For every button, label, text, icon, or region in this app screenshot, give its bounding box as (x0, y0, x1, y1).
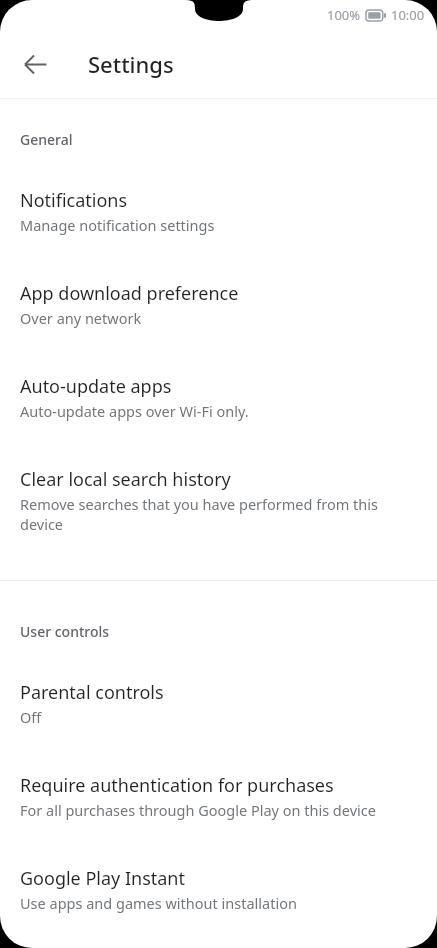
button[interactable]: Auto-update apps (0, 328, 437, 421)
staticText: Off (20, 707, 42, 727)
staticText: Manage notification settings (20, 215, 215, 235)
staticText: User controls (20, 622, 110, 641)
button[interactable]: Google Play Instant (0, 820, 437, 913)
staticText: Use apps and games without installation (20, 893, 297, 913)
button[interactable]: Clear local search history (0, 421, 437, 535)
staticText: Over any network (20, 308, 142, 328)
staticText: Google Play Instant (20, 866, 185, 891)
button[interactable]: Protect my updates (0, 913, 437, 948)
staticText: For all purchases through Google Play on… (20, 800, 376, 820)
staticText: Settings (88, 49, 174, 79)
staticText: Parental controls (20, 680, 164, 705)
staticText: 100% (327, 6, 361, 24)
button[interactable]: Back (11, 40, 59, 88)
staticText: Require authentication for purchases (20, 773, 334, 798)
button[interactable]: App download preference (0, 235, 437, 328)
staticText: Auto-update apps (20, 374, 172, 399)
staticText: Notifications (20, 188, 128, 213)
staticText: General (20, 130, 73, 149)
staticText: Clear local search history (20, 467, 231, 492)
button[interactable]: Notifications (0, 149, 437, 235)
button[interactable]: Parental controls (0, 641, 437, 727)
button[interactable]: Require authentication for purchases (0, 727, 437, 820)
staticText: App download preference (20, 281, 239, 306)
staticText: 10:00 (391, 6, 425, 24)
staticText: Remove searches that you have performed … (20, 494, 419, 535)
staticText: Auto-update apps over Wi-Fi only. (20, 401, 249, 421)
